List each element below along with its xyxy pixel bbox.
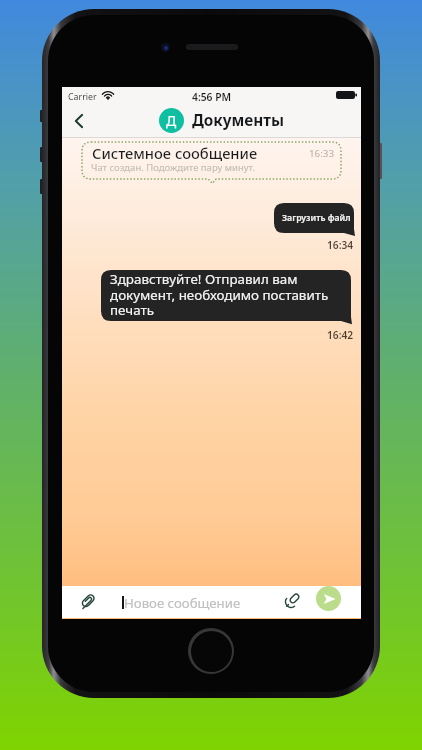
staticText: 16:33	[309, 147, 335, 160]
staticText: 16:34	[327, 238, 354, 252]
button[interactable]: Voice message	[280, 587, 306, 613]
button[interactable]: Загрузить файл	[274, 203, 354, 236]
staticText: Документы	[192, 110, 285, 131]
staticText: Системное сообщение	[92, 143, 258, 163]
staticText: Carrier	[68, 91, 97, 103]
staticText: Загрузить файл	[282, 212, 351, 224]
button[interactable]: Send	[316, 586, 341, 611]
button[interactable]: Attach file	[74, 588, 100, 614]
staticText: Чат создан. Подождите пару минут.	[91, 161, 256, 174]
staticText: Д	[166, 111, 177, 130]
staticText: Здравствуйте! Отправил вам документ, нео…	[110, 270, 329, 319]
button[interactable]: Здравствуйте! Отправил вам документ, нео…	[101, 270, 351, 325]
staticText: Новое сообщение	[124, 594, 241, 612]
staticText: 16:42	[327, 328, 354, 342]
staticText: 4:56 PM	[192, 90, 232, 104]
button[interactable]: Системное сообщение	[82, 142, 341, 179]
button[interactable]: Back	[65, 106, 94, 138]
